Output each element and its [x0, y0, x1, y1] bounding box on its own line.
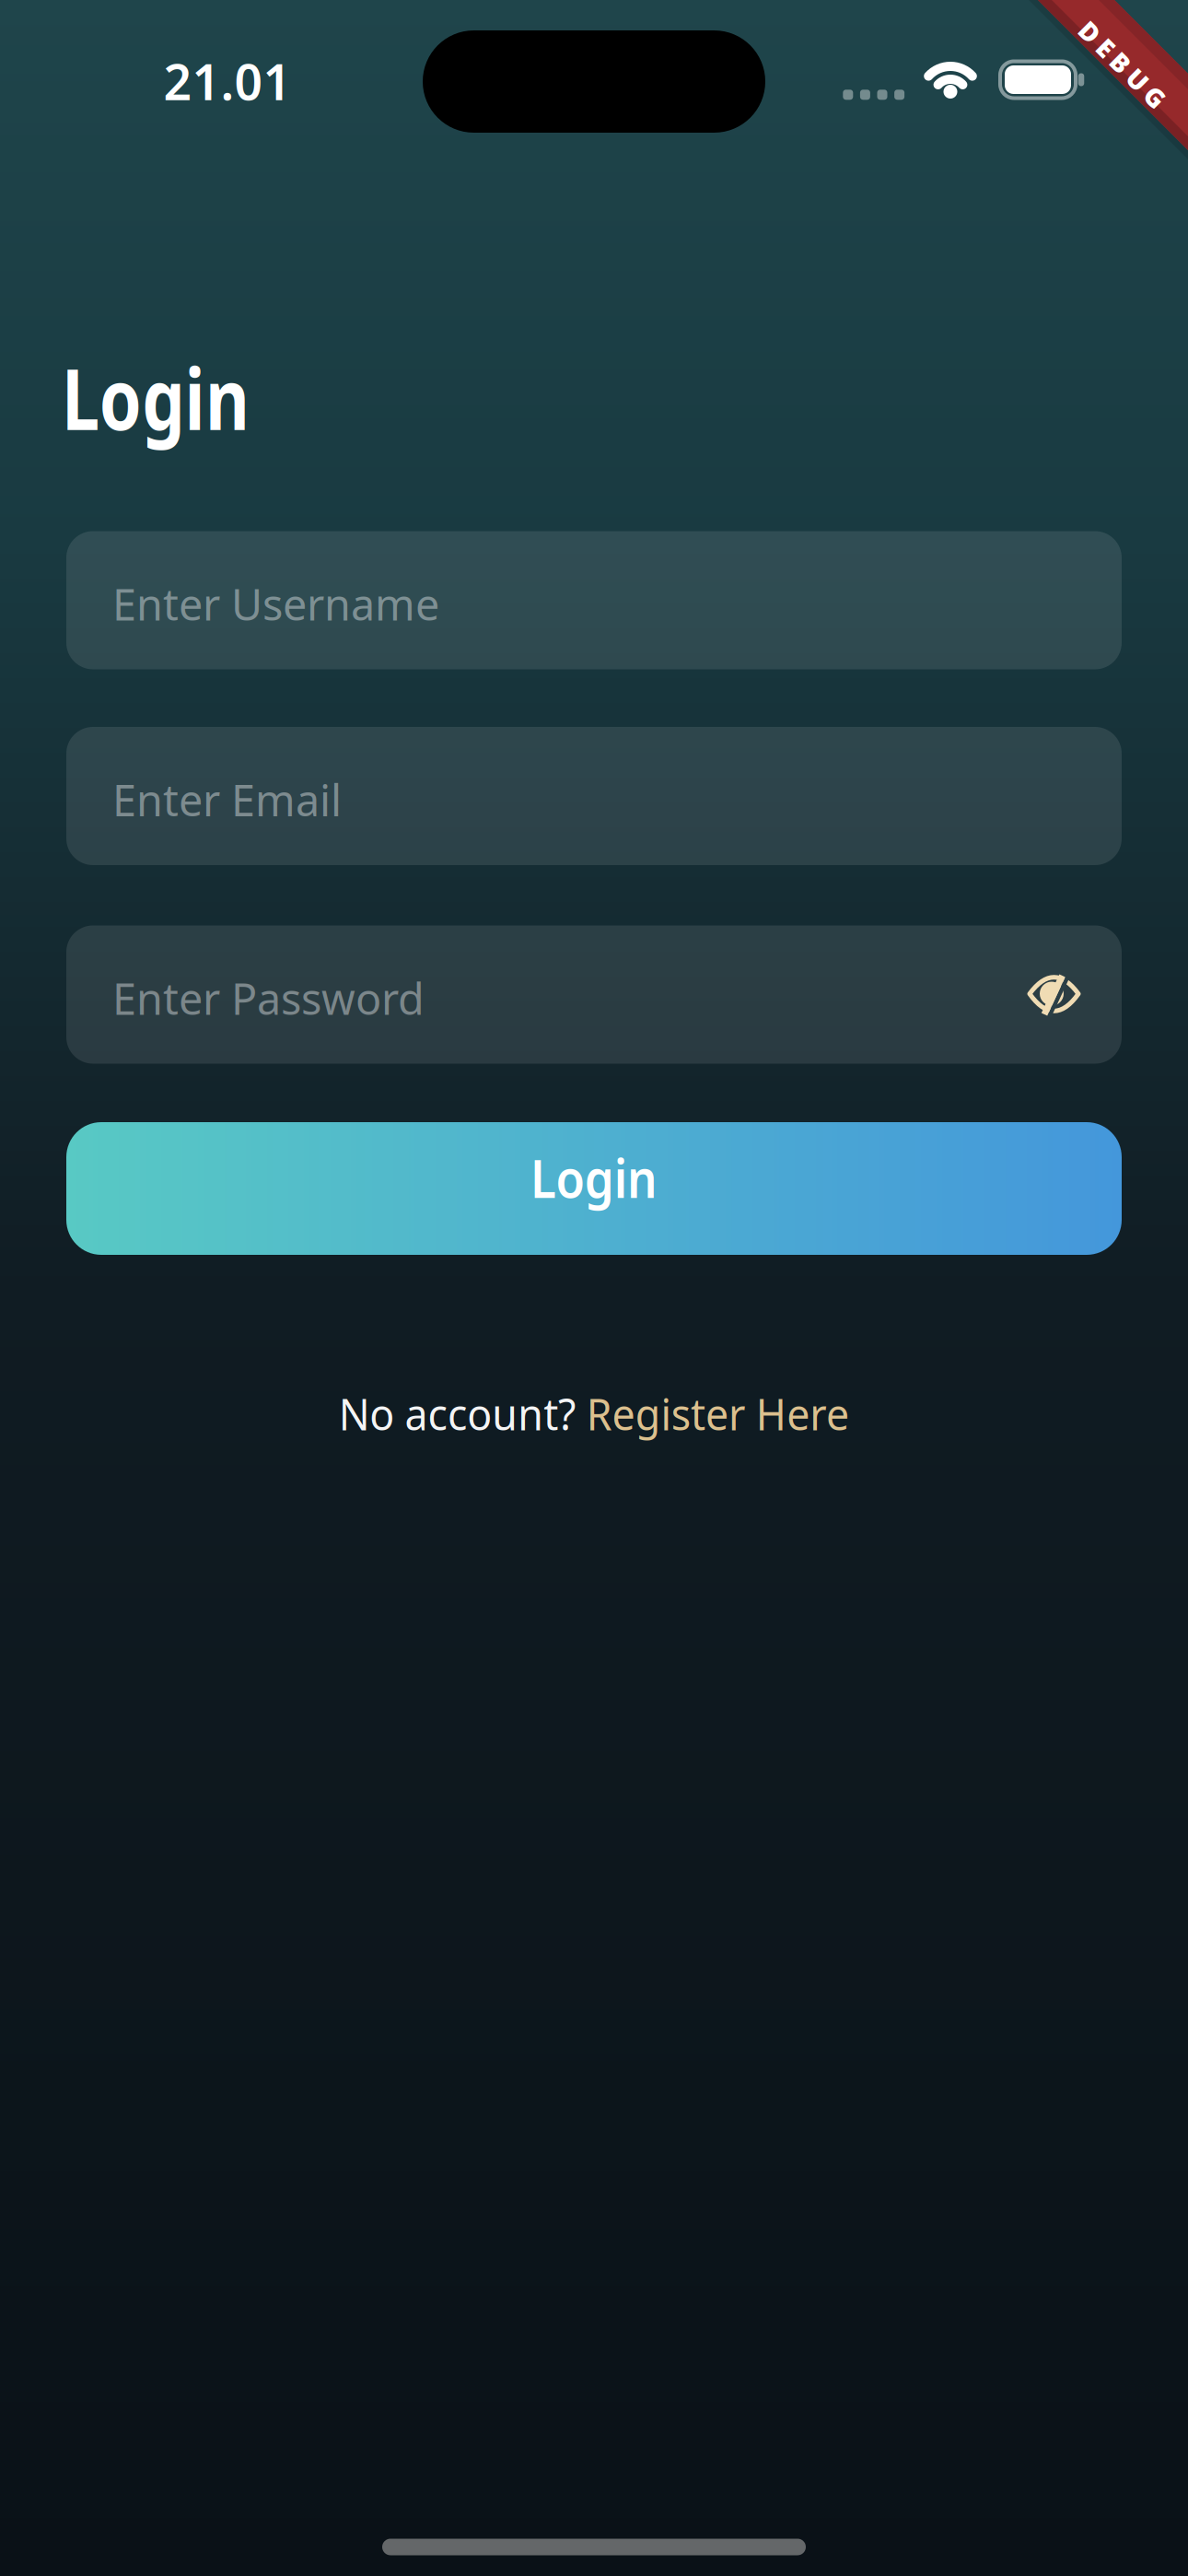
- staticText: Enter Email: [112, 771, 342, 828]
- button[interactable]: No account?: [320, 1384, 868, 1443]
- staticText: Enter Password: [112, 970, 425, 1027]
- button[interactable]: Login: [66, 1122, 1122, 1255]
- staticText: Register Here: [586, 1384, 868, 1443]
- staticText: Enter Username: [112, 575, 439, 632]
- staticText: 21.01: [163, 48, 291, 114]
- staticText: No account?: [320, 1384, 586, 1443]
- staticText: Login: [62, 341, 297, 453]
- staticText: DEBUG: [1067, 47, 1178, 82]
- button[interactable]: Show password: [1030, 976, 1078, 1013]
- button[interactable]: Enter Password: [66, 925, 1122, 1064]
- staticText: Login: [523, 1142, 665, 1212]
- button[interactable]: Enter Email: [66, 727, 1122, 865]
- button[interactable]: Enter Username: [66, 531, 1122, 669]
